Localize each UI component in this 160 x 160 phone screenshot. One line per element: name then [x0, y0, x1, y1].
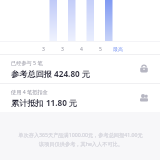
staticText: 最高: [113, 46, 123, 52]
staticText: 单次存入365天产品满1000.00元，参考总回报41.00元: [18, 131, 143, 138]
staticText: 3: [61, 46, 64, 53]
staticText: 4: [80, 46, 83, 53]
staticText: 3: [42, 46, 45, 53]
staticText: 累计抵扣 11.80 元: [11, 97, 78, 108]
staticText: 5: [99, 46, 102, 53]
button[interactable]: 已经参与 5 笔: [0, 55, 160, 83]
button[interactable]: 回报说明: [137, 62, 151, 76]
staticText: 已经参与 5 笔: [11, 59, 43, 66]
button[interactable]: 使用 4 笔抵扣金: [0, 84, 160, 112]
staticText: 使用 4 笔抵扣金: [11, 88, 48, 95]
staticText: 参考总回报 424.80 元: [11, 68, 91, 79]
staticText: 该项目仅供参考，其he入人不可比。: [39, 140, 123, 147]
button[interactable]: 抵扣说明: [137, 91, 151, 105]
